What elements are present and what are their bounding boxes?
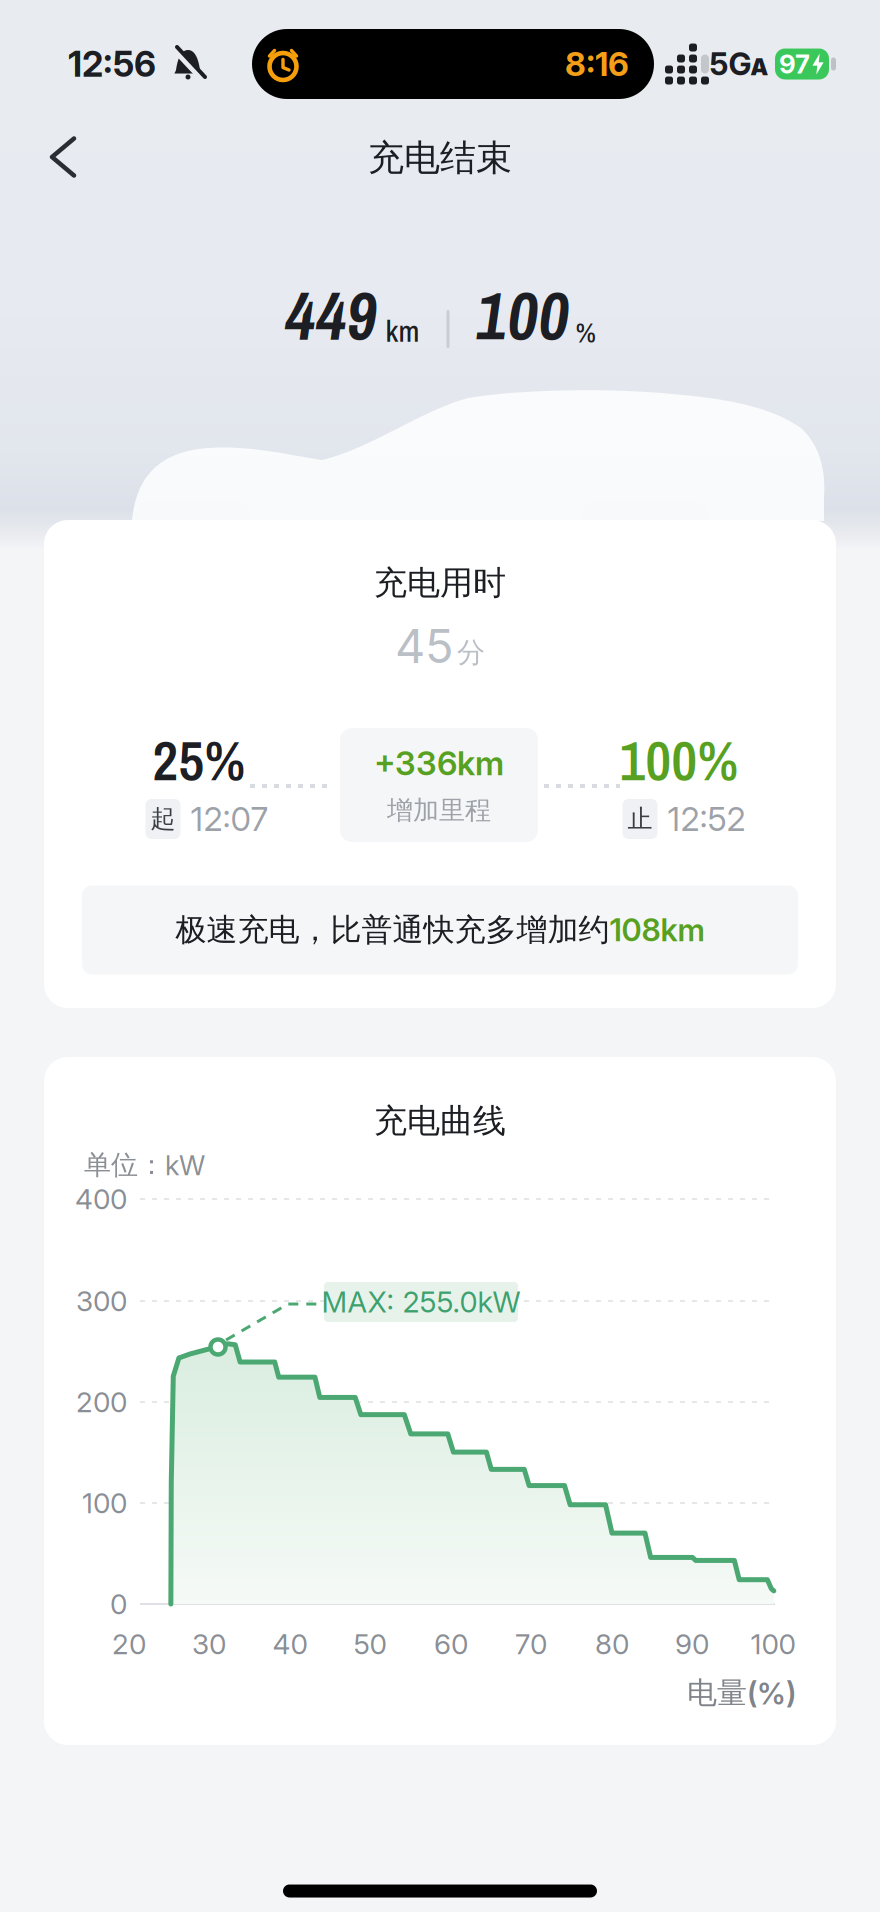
staticText: 电量(%) — [687, 1674, 796, 1712]
staticText: 充电结束 — [368, 135, 512, 181]
staticText: 100% — [619, 722, 738, 798]
staticText: 300 — [76, 1284, 127, 1318]
staticText: 90 — [675, 1627, 709, 1661]
staticText: 充电曲线 — [374, 1100, 506, 1142]
staticText: 12:07 — [190, 799, 268, 839]
staticText: MAX: 255.0kW — [321, 1284, 520, 1320]
staticText: 70 — [515, 1627, 547, 1661]
staticText: 80 — [595, 1627, 629, 1661]
staticText: 25% — [152, 722, 245, 798]
staticText: 45 — [395, 618, 454, 674]
staticText: 极速充电，比普通快充多增加约 — [175, 910, 609, 950]
staticText: 97 — [779, 48, 810, 80]
staticText: 单位：kW — [84, 1148, 205, 1182]
staticText: +336km — [374, 743, 504, 783]
staticText: 起 — [150, 803, 175, 835]
staticText: 增加里程 — [387, 794, 491, 827]
staticText: 0 — [110, 1587, 127, 1621]
staticText: 200 — [76, 1385, 127, 1419]
staticText: 100 — [750, 1627, 795, 1661]
staticText: 100 — [476, 270, 569, 360]
staticText: 12:52 — [667, 799, 745, 839]
staticText: km — [385, 311, 419, 351]
staticText: 100 — [82, 1486, 127, 1520]
staticText: 分 — [457, 635, 485, 670]
staticText: 108km — [609, 911, 704, 949]
staticText: 20 — [112, 1627, 146, 1661]
staticText: 充电用时 — [374, 562, 506, 604]
staticText: 60 — [434, 1627, 468, 1661]
staticText: 40 — [272, 1627, 307, 1661]
staticText: 449 — [284, 270, 377, 360]
staticText: 5Gᴀ — [709, 45, 768, 83]
staticText: 12:56 — [68, 43, 156, 85]
button[interactable]: Back — [34, 120, 92, 193]
staticText: 止 — [627, 803, 652, 835]
staticText: % — [575, 313, 595, 351]
staticText: 8:16 — [565, 44, 629, 84]
staticText: 30 — [192, 1627, 226, 1661]
staticText: 400 — [75, 1182, 127, 1216]
staticText: 50 — [353, 1627, 386, 1661]
